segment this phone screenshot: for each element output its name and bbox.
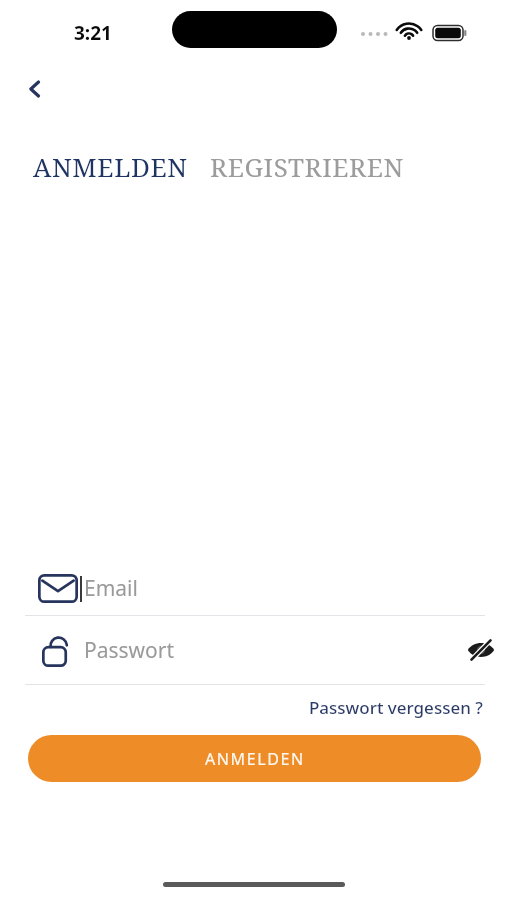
button[interactable]: Email bbox=[0, 562, 507, 615]
staticText: Passwort vergessen ? bbox=[309, 696, 483, 719]
button[interactable]: Back bbox=[14, 68, 56, 110]
button[interactable]: Passwort vergessen ? bbox=[309, 696, 483, 719]
staticText: Passwort bbox=[84, 636, 175, 665]
button[interactable]: REGISTRIEREN bbox=[210, 149, 405, 184]
button[interactable]: ANMELDEN bbox=[28, 735, 481, 782]
button[interactable]: Passwort bbox=[0, 616, 507, 684]
staticText: REGISTRIEREN bbox=[210, 149, 405, 184]
staticText: ANMELDEN bbox=[205, 748, 305, 770]
button[interactable]: Show password bbox=[459, 628, 503, 672]
button[interactable]: ANMELDEN bbox=[33, 149, 188, 184]
staticText: ANMELDEN bbox=[33, 149, 188, 184]
staticText: 3:21 bbox=[74, 20, 112, 46]
staticText: Email bbox=[84, 574, 138, 603]
